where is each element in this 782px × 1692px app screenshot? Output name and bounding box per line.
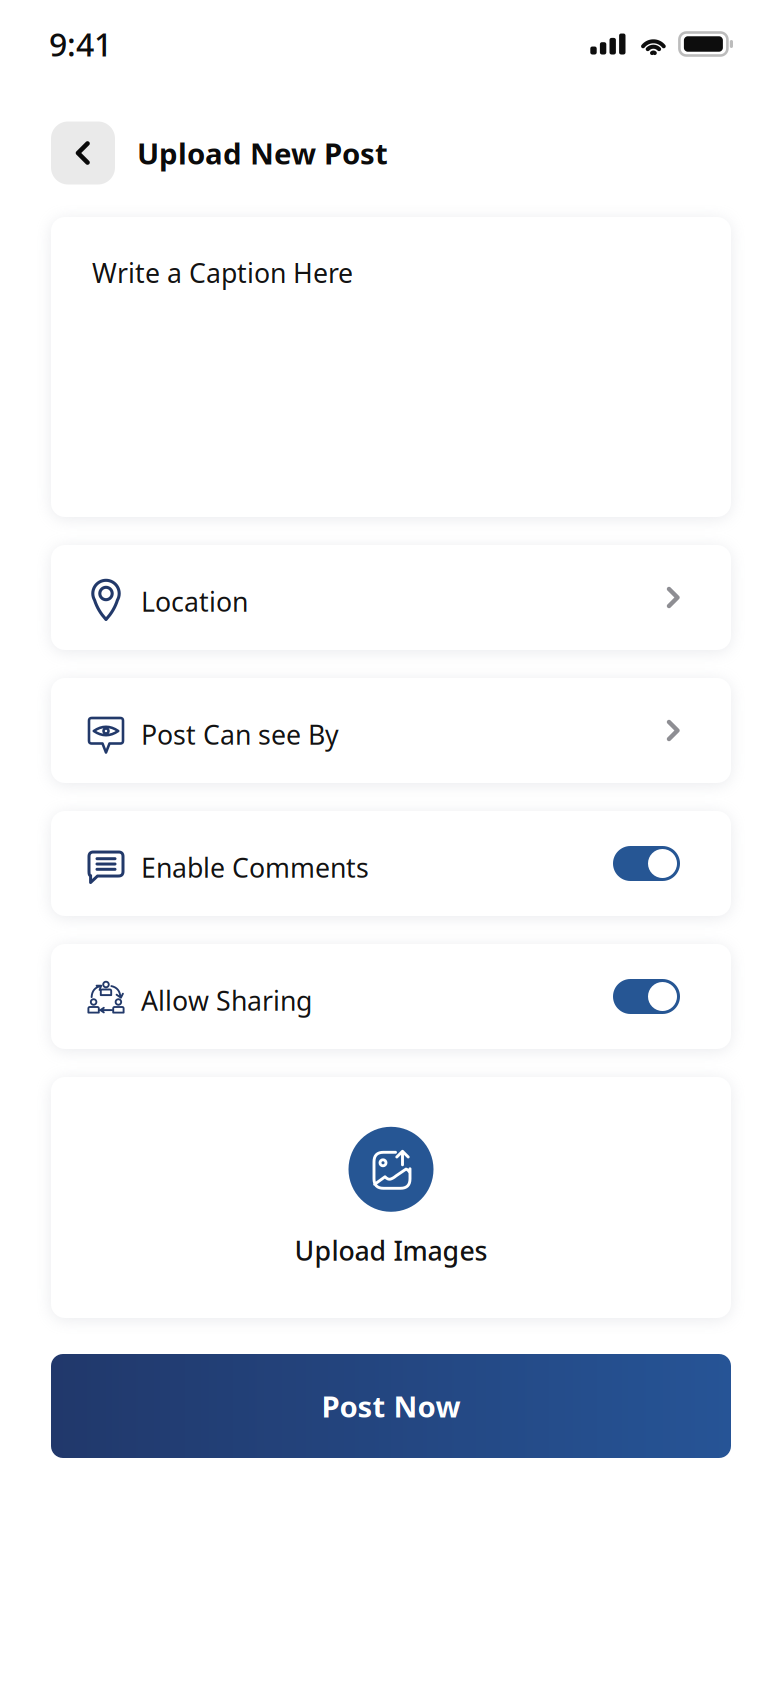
button[interactable]: Post Can see By (51, 678, 731, 783)
button[interactable]: Location (51, 545, 731, 650)
staticText: 9:41 (49, 23, 112, 65)
staticText: Allow Sharing (141, 983, 312, 1018)
staticText: Enable Comments (141, 850, 369, 885)
staticText: Write a Caption Here (92, 255, 353, 290)
button[interactable]: Upload Images (51, 1077, 731, 1318)
button[interactable]: Back (51, 121, 115, 185)
staticText: Upload Images (294, 1233, 487, 1268)
staticText: Post Can see By (141, 717, 339, 752)
staticText: Location (141, 584, 248, 619)
staticText: Upload New Post (137, 133, 388, 172)
staticText: Post Now (321, 1386, 460, 1425)
button[interactable]: Allow Sharing (51, 944, 731, 1049)
button[interactable]: Enable Comments (51, 811, 731, 916)
button[interactable]: Post Now (51, 1354, 731, 1458)
